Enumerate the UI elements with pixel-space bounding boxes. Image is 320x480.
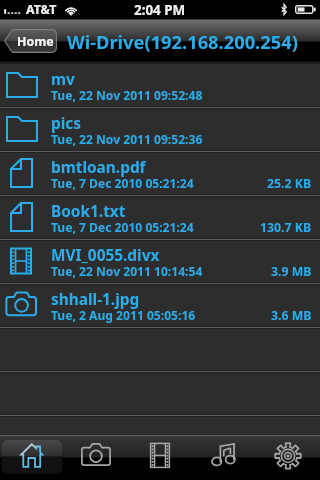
button[interactable]: Book1.txt — [0, 195, 320, 239]
button[interactable]: Photos — [64, 435, 128, 480]
button[interactable]: Settings — [256, 435, 320, 480]
button[interactable]: shhall-1.jpg — [0, 283, 320, 327]
button[interactable]: Music — [192, 435, 256, 480]
staticText: MVI_0055.divx — [51, 245, 160, 266]
staticText: Tue, 22 Nov 2011 09:52:48 — [51, 87, 203, 103]
staticText: Tue, 22 Nov 2011 09:52:36 — [51, 131, 203, 147]
staticText: Home — [17, 33, 54, 50]
staticText: Tue, 7 Dec 2010 05:21:24 — [51, 219, 194, 235]
button[interactable]: pics — [0, 107, 320, 151]
staticText: bmtloan.pdf — [51, 157, 146, 178]
button[interactable]: Home — [0, 435, 64, 480]
staticText: 3.6 MB — [271, 307, 312, 324]
staticText: Tue, 7 Dec 2010 05:21:24 — [51, 175, 194, 191]
staticText: Tue, 2 Aug 2011 05:05:16 — [51, 307, 196, 323]
button[interactable]: MVI_0055.divx — [0, 239, 320, 283]
staticText: Book1.txt — [51, 201, 126, 222]
button[interactable]: mv — [0, 63, 320, 107]
staticText: 2:04 PM — [134, 1, 186, 19]
button[interactable]: Videos — [128, 435, 192, 480]
staticText: 130.7 KB — [260, 219, 312, 236]
staticText: 3.9 MB — [271, 263, 312, 280]
staticText: mv — [51, 69, 75, 90]
staticText: shhall-1.jpg — [51, 289, 140, 310]
staticText: Tue, 22 Nov 2011 10:14:54 — [51, 263, 203, 279]
staticText: 25.2 KB — [267, 175, 312, 192]
staticText: pics — [51, 113, 81, 134]
staticText: AT&T — [26, 1, 57, 18]
button[interactable]: bmtloan.pdf — [0, 151, 320, 195]
button[interactable]: Home — [4, 29, 57, 53]
staticText: Wi-Drive(192.168.200.254) — [67, 29, 298, 54]
